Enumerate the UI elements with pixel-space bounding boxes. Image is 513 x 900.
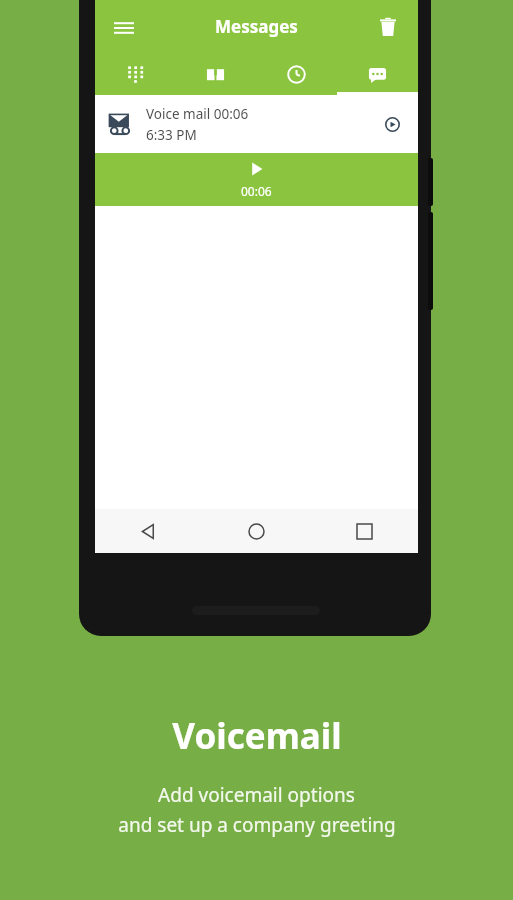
button[interactable]: Home [202, 509, 310, 553]
staticText: Messages [215, 15, 298, 38]
button[interactable]: Voice mail 00:06 [95, 95, 418, 153]
button[interactable]: Recents [256, 53, 337, 95]
button[interactable]: Messages [337, 53, 418, 95]
staticText: Voice mail 00:06 [146, 105, 249, 123]
button[interactable]: Dialpad [95, 53, 175, 95]
staticText: and set up a company greeting [118, 812, 396, 838]
staticText: Add voicemail options [158, 782, 355, 808]
staticText: 6:33 PM [146, 126, 197, 144]
button[interactable]: Back [95, 509, 202, 553]
staticText: Voicemail [172, 712, 342, 760]
button[interactable]: Play [95, 153, 418, 206]
button[interactable]: Menu [108, 11, 140, 43]
staticText: 00:06 [241, 183, 272, 199]
button[interactable]: Recents [310, 509, 418, 553]
button[interactable]: Play voicemail [375, 107, 409, 141]
button[interactable]: Delete [372, 11, 404, 43]
button[interactable]: Contacts [175, 53, 256, 95]
